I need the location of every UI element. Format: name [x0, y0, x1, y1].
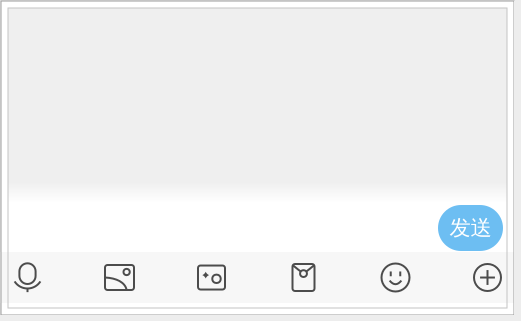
staticText: 发送 [449, 215, 491, 241]
button[interactable]: Stickers [181, 254, 241, 300]
button[interactable]: 发送 [438, 205, 503, 251]
button[interactable]: Photos [89, 254, 149, 300]
button[interactable]: Voice message [0, 254, 57, 300]
button[interactable]: Red packet [273, 254, 333, 300]
button[interactable]: More [457, 254, 517, 300]
button[interactable]: Emoji [365, 254, 425, 300]
